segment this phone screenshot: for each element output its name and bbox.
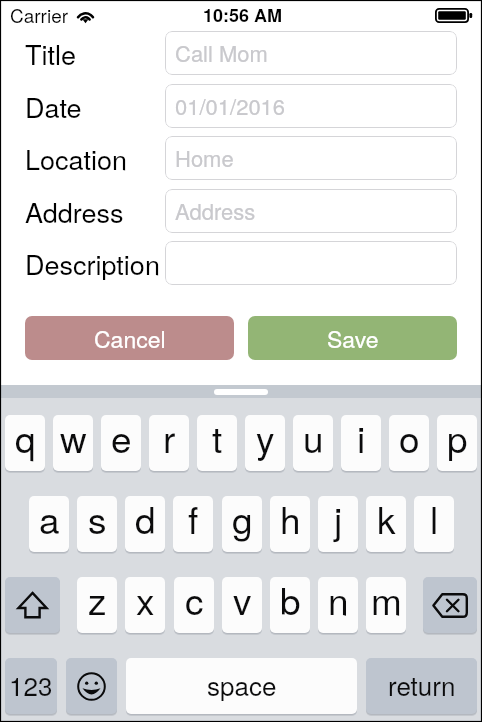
staticText: l xyxy=(430,496,439,545)
staticText: Description xyxy=(25,244,160,283)
staticText: b xyxy=(280,577,301,626)
button[interactable]: return xyxy=(366,658,477,714)
staticText: Home xyxy=(175,142,234,174)
staticText: v xyxy=(233,577,252,626)
staticText: k xyxy=(377,496,396,545)
staticText: Date xyxy=(25,87,82,126)
staticText: i xyxy=(357,415,366,464)
button[interactable]: a xyxy=(29,496,69,552)
button[interactable]: Shift xyxy=(5,577,60,633)
staticText: w xyxy=(60,415,87,464)
staticText: n xyxy=(328,577,349,626)
button[interactable]: o xyxy=(389,415,429,471)
button[interactable]: Address xyxy=(165,189,457,233)
staticText: Cancel xyxy=(94,322,166,355)
staticText: 123 xyxy=(9,666,53,703)
button[interactable]: b xyxy=(270,577,310,633)
button[interactable]: space xyxy=(126,658,357,714)
button[interactable]: p xyxy=(437,415,477,471)
staticText: s xyxy=(88,496,107,545)
staticText: p xyxy=(447,415,468,464)
button[interactable]: s xyxy=(77,496,117,552)
staticText: a xyxy=(39,496,60,545)
staticText: 10:56 AM xyxy=(203,2,283,28)
staticText: space xyxy=(207,666,277,703)
staticText: e xyxy=(111,415,132,464)
staticText: u xyxy=(303,415,324,464)
button[interactable]: q xyxy=(5,415,45,471)
staticText: Carrier xyxy=(10,1,69,28)
button[interactable]: g xyxy=(222,496,262,552)
button[interactable]: w xyxy=(53,415,93,471)
button[interactable]: k xyxy=(366,496,406,552)
button[interactable]: i xyxy=(341,415,381,471)
button[interactable]: z xyxy=(77,577,117,633)
staticText: h xyxy=(280,496,301,545)
button[interactable]: l xyxy=(414,496,454,552)
button[interactable]: Backspace xyxy=(423,577,477,633)
button[interactable]: Cancel xyxy=(25,316,234,360)
button[interactable] xyxy=(165,241,457,285)
button[interactable]: u xyxy=(293,415,333,471)
staticText: Save xyxy=(327,322,379,355)
staticText: m xyxy=(371,577,402,626)
button[interactable]: Save xyxy=(248,316,457,360)
button[interactable]: x xyxy=(125,577,165,633)
staticText: f xyxy=(188,496,199,545)
button[interactable]: j xyxy=(318,496,358,552)
button[interactable]: v xyxy=(222,577,262,633)
staticText: Call Mom xyxy=(175,37,268,69)
button[interactable]: Call Mom xyxy=(165,31,457,75)
staticText: c xyxy=(185,577,204,626)
button[interactable]: m xyxy=(366,577,406,633)
staticText: z xyxy=(88,577,107,626)
staticText: j xyxy=(334,496,343,545)
button[interactable]: c xyxy=(174,577,214,633)
staticText: Location xyxy=(25,139,128,178)
button[interactable]: e xyxy=(101,415,141,471)
staticText: t xyxy=(212,415,223,464)
staticText: o xyxy=(399,415,420,464)
button[interactable]: t xyxy=(197,415,237,471)
staticText: Address xyxy=(175,195,256,227)
staticText: Title xyxy=(25,34,77,73)
button[interactable]: 01/01/2016 xyxy=(165,84,457,128)
staticText: d xyxy=(135,496,156,545)
button[interactable]: f xyxy=(173,496,213,552)
button[interactable]: d xyxy=(125,496,165,552)
button[interactable]: r xyxy=(149,415,189,471)
button[interactable]: Home xyxy=(165,136,457,180)
staticText: q xyxy=(15,415,36,464)
button[interactable]: n xyxy=(318,577,358,633)
button[interactable]: y xyxy=(245,415,285,471)
staticText: g xyxy=(232,496,253,545)
button[interactable]: h xyxy=(270,496,310,552)
staticText: 01/01/2016 xyxy=(175,90,286,122)
staticText: y xyxy=(256,415,275,464)
button[interactable]: Emoji keyboard xyxy=(66,658,117,714)
staticText: x xyxy=(136,577,155,626)
staticText: r xyxy=(163,415,176,464)
staticText: Address xyxy=(25,192,124,231)
staticText: return xyxy=(388,666,456,703)
button[interactable]: 123 xyxy=(5,658,57,714)
